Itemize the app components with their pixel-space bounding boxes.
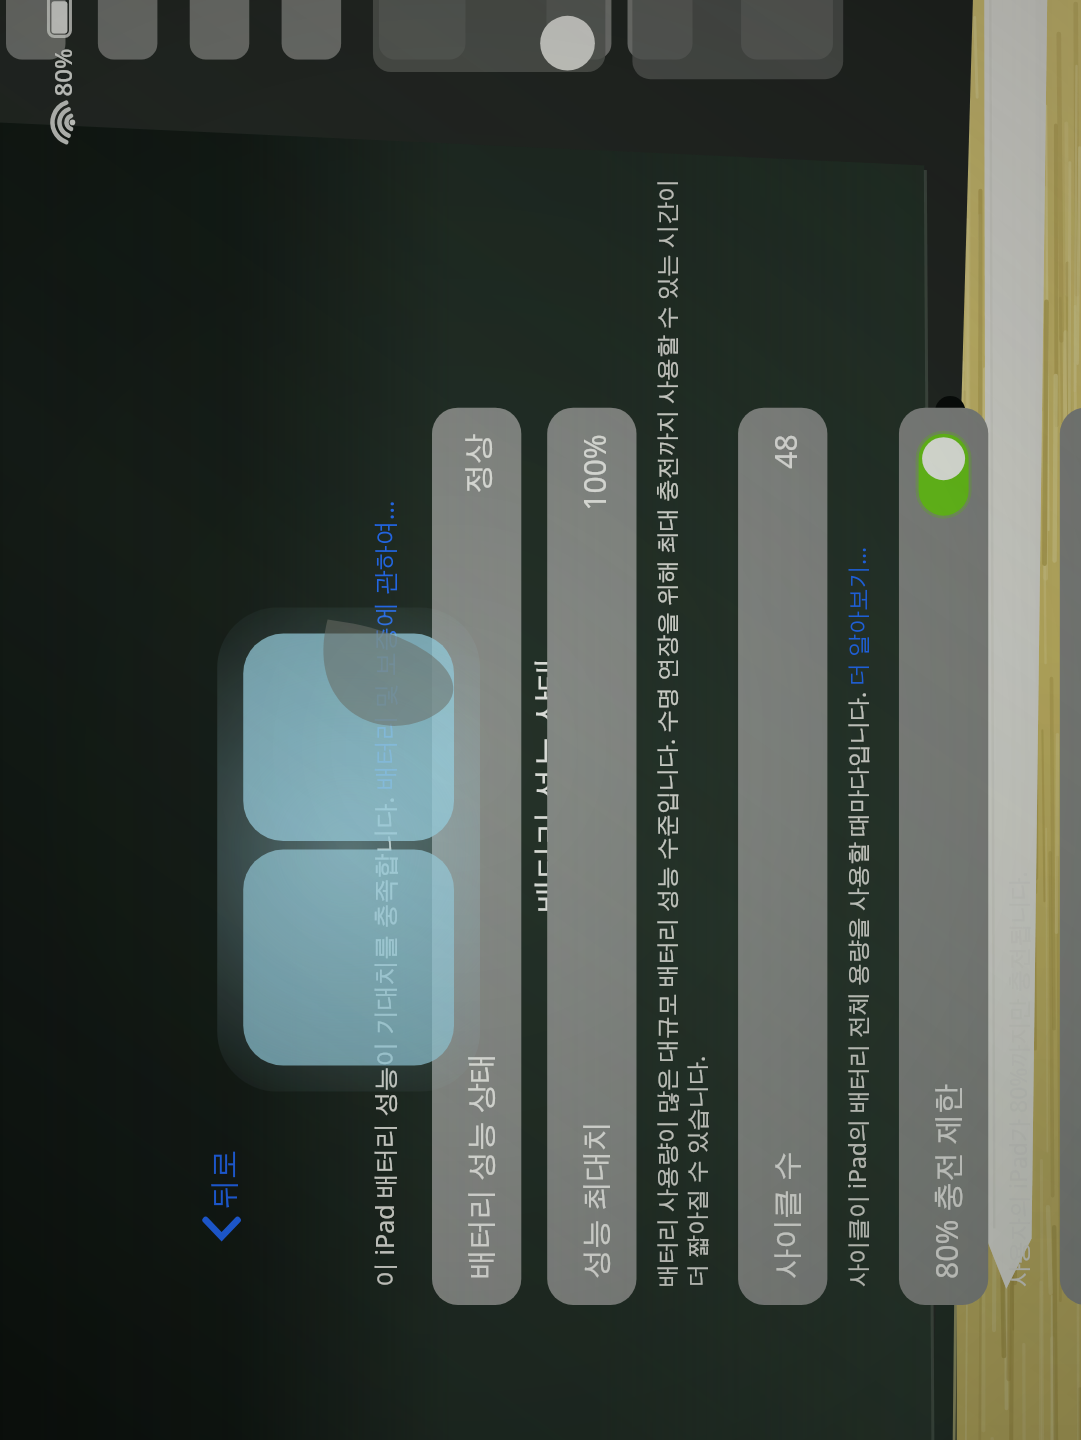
button[interactable] bbox=[752, 340, 838, 1240]
button[interactable] bbox=[498, 340, 584, 1240]
button[interactable] bbox=[155, 290, 233, 1240]
button[interactable]: 80% 충전 제한 켜기 bbox=[380, 1140, 458, 1260]
button[interactable] bbox=[372, 340, 464, 1240]
button[interactable] bbox=[625, 340, 711, 1240]
button[interactable] bbox=[322, 690, 362, 910]
button[interactable] bbox=[700, 620, 740, 900]
button[interactable] bbox=[232, 290, 318, 1240]
